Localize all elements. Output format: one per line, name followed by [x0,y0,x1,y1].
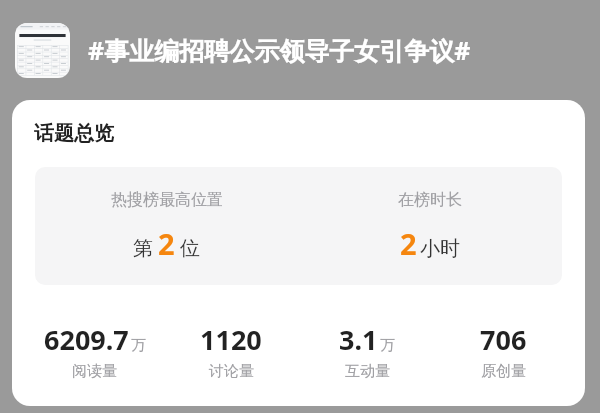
staticText: 阅读量 [72,362,117,381]
staticText: 话题总览 [34,121,114,146]
staticText: 万 [380,336,395,355]
staticText: #事业编招聘公示领导子女引争议# [88,33,471,67]
staticText: 小时 [420,236,460,261]
button[interactable]: 在榜时长 [298,167,562,285]
staticText: 3.1 [339,321,378,358]
button[interactable]: 706 [435,321,571,381]
staticText: 热搜榜最高位置 [111,190,223,210]
button[interactable]: 热搜榜最高位置 [35,167,298,285]
staticText: 2 [158,224,175,263]
staticText: 原创量 [481,362,526,381]
staticText: 万 [131,336,146,355]
button[interactable]: 6209.7 [26,321,163,381]
button[interactable]: 话题配图 [15,23,70,78]
staticText: 讨论量 [209,362,254,381]
staticText: 706 [480,321,527,358]
staticText: 互动量 [345,362,390,381]
staticText: 第 [133,236,153,261]
staticText: 在榜时长 [398,190,462,210]
button[interactable]: 3.1 [299,321,435,381]
button[interactable]: 1120 [163,321,299,381]
staticText: 位 [180,236,200,261]
staticText: 1120 [200,321,262,358]
button[interactable]: #事业编招聘公示领导子女引争议# [88,33,600,67]
staticText: 2 [400,224,417,263]
staticText: 6209.7 [44,321,129,358]
